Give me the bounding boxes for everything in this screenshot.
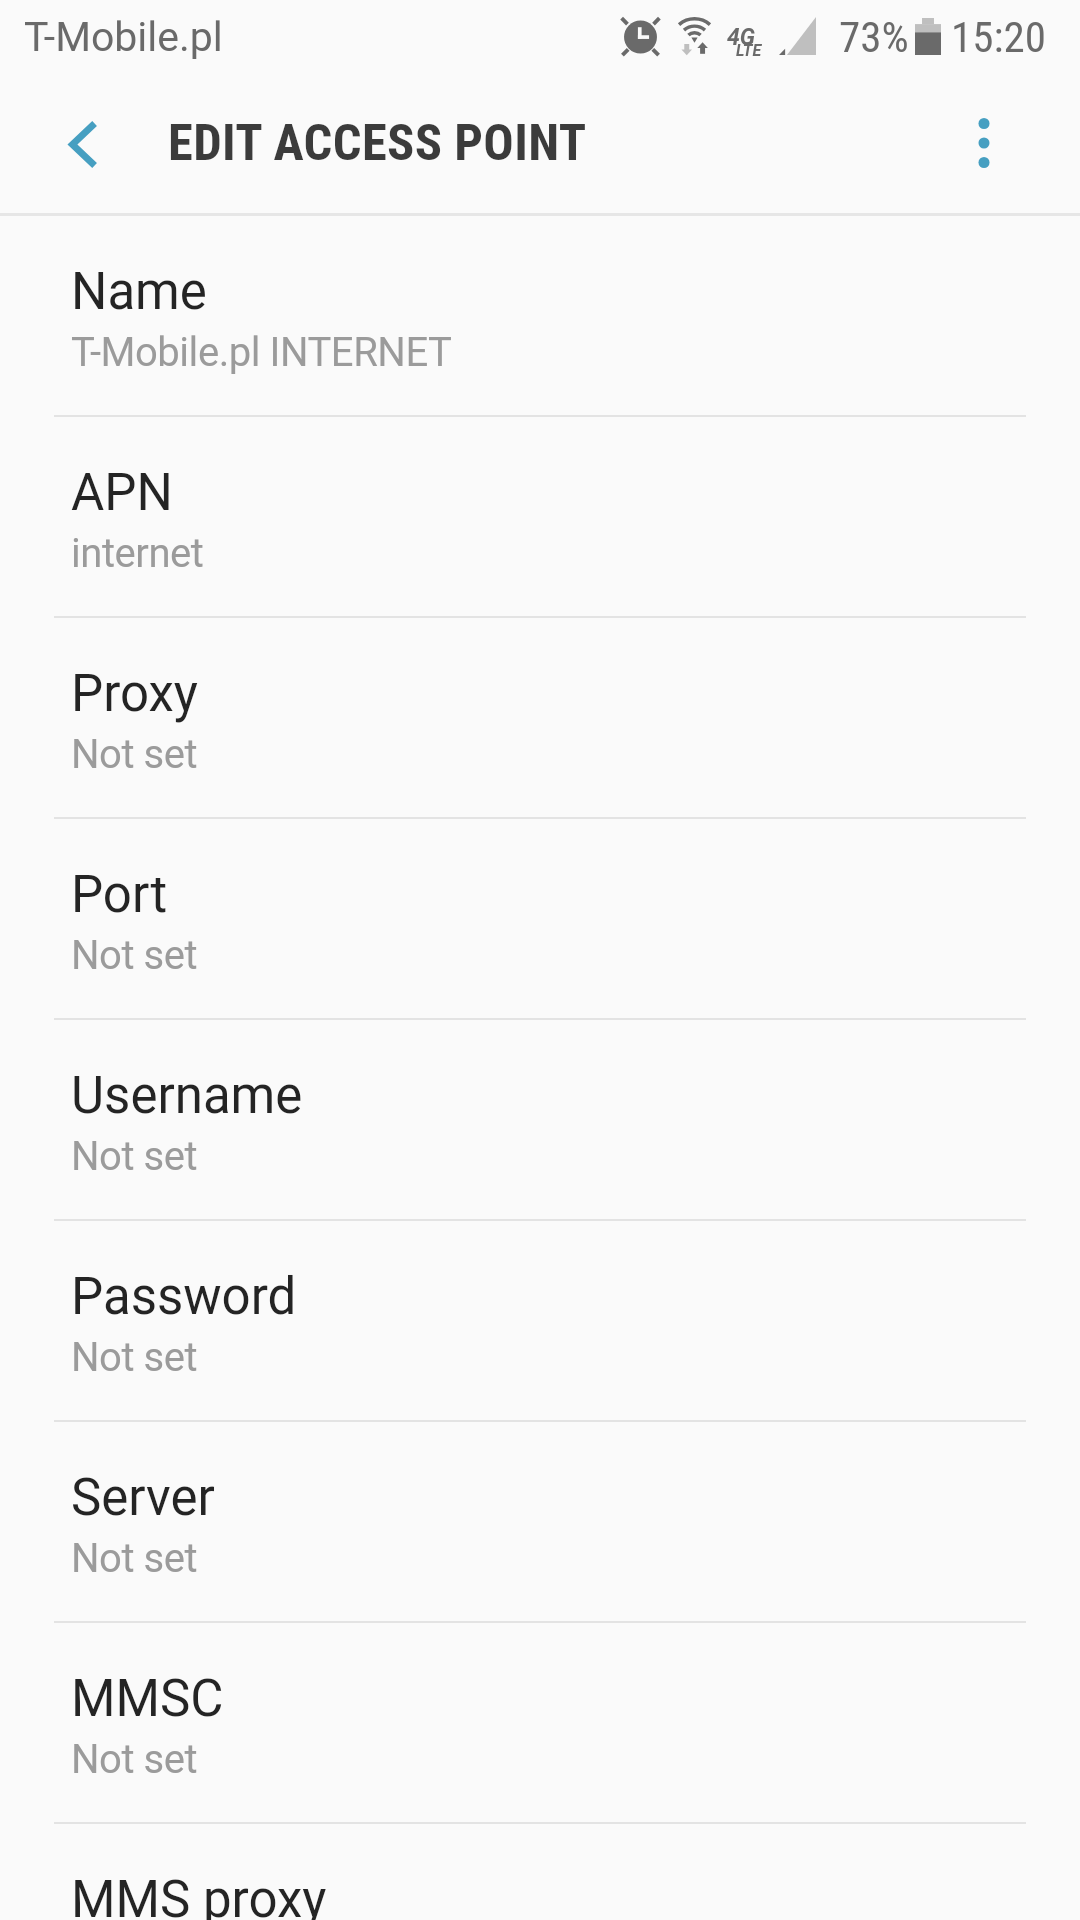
staticText: Name <box>71 262 207 322</box>
staticText: APN <box>71 463 173 523</box>
button[interactable]: Port <box>0 819 1080 1018</box>
staticText: Password <box>71 1267 297 1327</box>
staticText: internet <box>71 530 204 577</box>
staticText: EDIT ACCESS POINT <box>168 113 587 172</box>
button[interactable]: Navigate up <box>35 95 131 191</box>
button[interactable]: More options <box>936 95 1032 191</box>
staticText: Not set <box>71 1736 198 1783</box>
staticText: 4G <box>727 24 755 51</box>
button[interactable]: MMSC <box>0 1623 1080 1822</box>
button[interactable]: MMS proxy <box>0 1824 1080 1920</box>
staticText: Not set <box>71 1334 198 1381</box>
staticText: Not set <box>71 731 198 778</box>
staticText: Not set <box>71 1133 198 1180</box>
staticText: Server <box>71 1468 215 1528</box>
staticText: Not set <box>71 1535 198 1582</box>
button[interactable]: Proxy <box>0 618 1080 817</box>
staticText: Proxy <box>71 664 198 724</box>
button[interactable]: Name <box>0 216 1080 415</box>
staticText: Username <box>71 1066 303 1126</box>
staticText: Port <box>71 865 168 925</box>
staticText: 73% <box>839 12 909 62</box>
staticText: MMS proxy <box>71 1870 327 1920</box>
button[interactable]: Server <box>0 1422 1080 1621</box>
staticText: T-Mobile.pl <box>24 13 223 61</box>
staticText: T-Mobile.pl INTERNET <box>71 329 452 376</box>
button[interactable]: Username <box>0 1020 1080 1219</box>
staticText: Not set <box>71 932 198 979</box>
button[interactable]: APN <box>0 417 1080 616</box>
staticText: 15:20 <box>951 12 1046 62</box>
staticText: MMSC <box>71 1669 224 1729</box>
staticText: LTE <box>736 41 762 60</box>
button[interactable]: Password <box>0 1221 1080 1420</box>
